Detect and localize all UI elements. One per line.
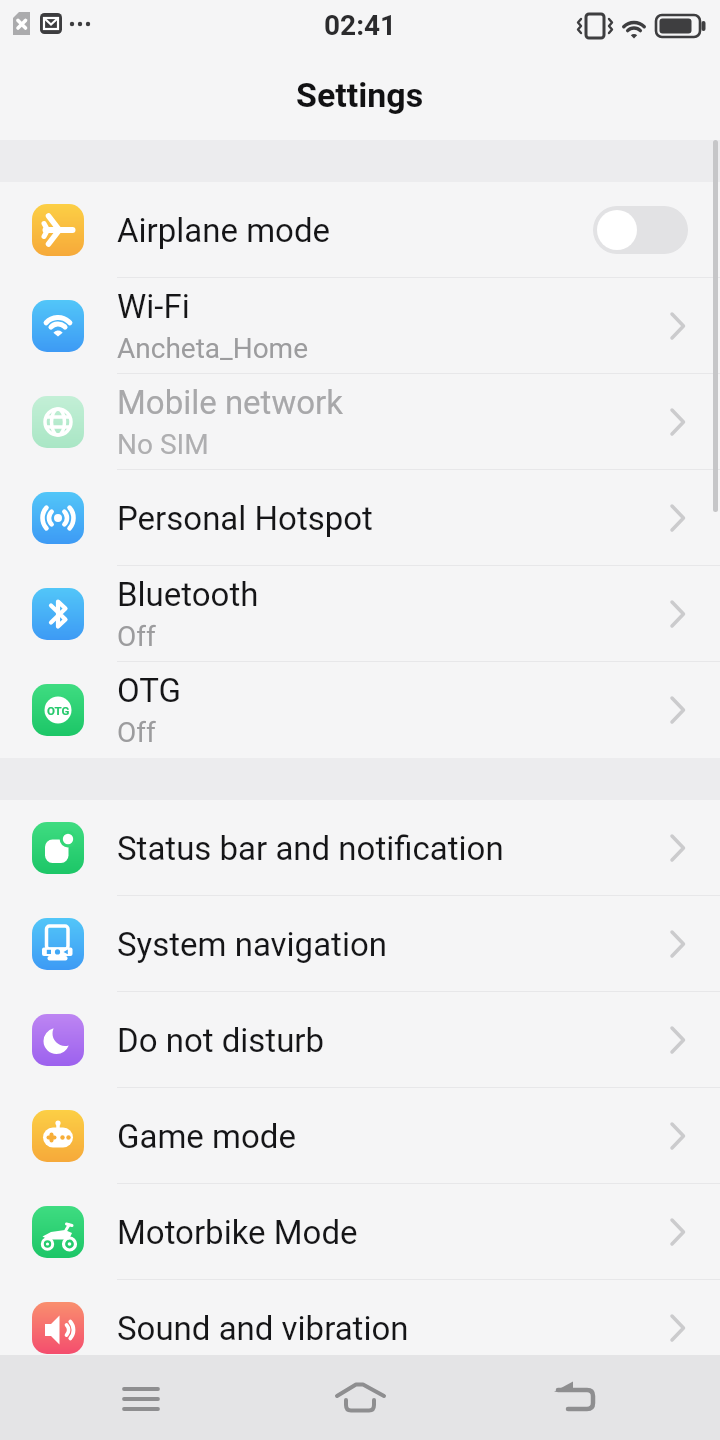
staticText: Airplane mode [117, 211, 331, 250]
staticText: OTG [117, 671, 181, 710]
staticText: Settings [296, 75, 424, 115]
staticText: OTG [47, 704, 70, 717]
staticText: Do not disturb [117, 1021, 325, 1060]
staticText: Game mode [117, 1117, 296, 1156]
staticText: No SIM [117, 428, 209, 461]
staticText: Bluetooth [117, 575, 259, 614]
button[interactable]: Airplane mode [0, 182, 720, 278]
staticText: Status bar and notification [117, 829, 504, 868]
button[interactable]: Game mode [0, 1088, 720, 1184]
staticText: Ancheta_Home [117, 332, 309, 365]
button[interactable]: OTG [0, 662, 720, 758]
staticText: Sound and vibration [117, 1309, 409, 1348]
button[interactable]: Wi-Fi [0, 278, 720, 374]
button[interactable] [593, 206, 688, 254]
staticText: Off [117, 716, 156, 749]
button[interactable]: Personal Hotspot [0, 470, 720, 566]
staticText: 02:41 [324, 9, 397, 42]
button[interactable] [240, 1355, 480, 1440]
button[interactable]: Mobile network [0, 374, 720, 470]
staticText: Wi-Fi [117, 287, 190, 326]
button[interactable]: Status bar and notification [0, 800, 720, 896]
staticText: Motorbike Mode [117, 1213, 358, 1252]
staticText: System navigation [117, 925, 387, 964]
button[interactable] [0, 1355, 240, 1440]
button[interactable]: System navigation [0, 896, 720, 992]
staticText: Personal Hotspot [117, 499, 373, 538]
staticText: Mobile network [117, 383, 343, 422]
staticText: Off [117, 620, 156, 653]
button[interactable]: Bluetooth [0, 566, 720, 662]
button[interactable]: Motorbike Mode [0, 1184, 720, 1280]
button[interactable]: Sound and vibration [0, 1280, 720, 1376]
button[interactable]: Do not disturb [0, 992, 720, 1088]
button[interactable] [480, 1355, 720, 1440]
